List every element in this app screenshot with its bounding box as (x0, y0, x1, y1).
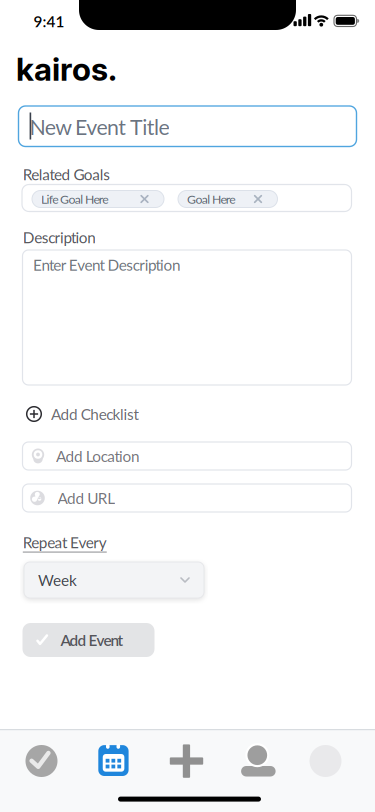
staticText: New Event Title (29, 114, 169, 140)
staticText: Repeat Every (23, 533, 107, 551)
staticText: Goal Here (187, 192, 235, 206)
staticText: Enter Event Description (33, 255, 181, 274)
staticText: Description (23, 228, 96, 246)
button[interactable]: Add Event (22, 623, 154, 657)
button[interactable]: Add Checklist (26, 402, 138, 426)
staticText: Add Checklist (51, 405, 138, 423)
button[interactable]: Tasks (6, 729, 77, 793)
staticText: Add Location (56, 447, 140, 465)
button[interactable]: New Event Title (18, 106, 356, 146)
button[interactable]: Calendar (77, 729, 148, 793)
staticText: Add Event (60, 631, 123, 649)
staticText: 9:41 (33, 12, 64, 30)
button[interactable]: Add (148, 729, 219, 793)
button[interactable]: More (290, 729, 361, 793)
staticText: Add URL (57, 489, 115, 507)
button[interactable]: Add Location (22, 442, 351, 470)
button[interactable]: Life Goal Here (32, 190, 164, 207)
button[interactable]: Profile (219, 729, 290, 793)
staticText: Related Goals (23, 165, 110, 183)
button[interactable]: Add URL (22, 484, 351, 512)
button[interactable]: Repeat Every Week (24, 562, 204, 598)
button[interactable]: Goal Here (178, 190, 277, 207)
staticText: Life Goal Here (41, 192, 108, 206)
button[interactable]: Enter Event Description (22, 250, 351, 385)
staticText: Week (38, 571, 77, 589)
staticText: kairos. (16, 50, 117, 88)
